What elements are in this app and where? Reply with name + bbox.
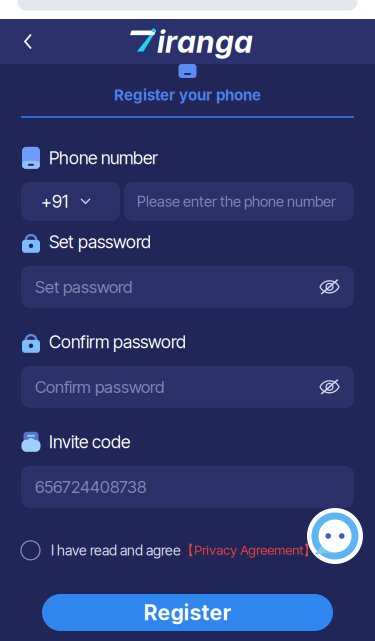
staticText: iranga [157,23,253,60]
button[interactable]: +91 [21,182,120,221]
staticText: Please enter the phone number [137,192,336,210]
staticText: Confirm password [49,331,186,352]
staticText: Register [143,600,231,625]
button[interactable]: Customer service [306,507,364,565]
staticText: 656724408738 [35,477,146,497]
staticText: Invite code [49,431,130,452]
button[interactable]: 【Privacy Agreement】 [181,542,316,559]
button[interactable]: Confirm password [21,366,354,408]
button[interactable]: Back [8,19,48,64]
staticText: Confirm password [35,377,164,397]
staticText: I have read and agree [51,542,181,559]
staticText: Set password [35,277,132,297]
staticText: Set password [49,231,151,252]
button[interactable]: Please enter the phone number [124,182,354,221]
staticText: Register your phone [114,86,261,104]
staticText: 【Privacy Agreement】 [181,542,316,559]
button[interactable]: 656724408738 [21,466,354,508]
staticText: +91 [41,191,68,212]
button[interactable]: Register [42,594,333,631]
button[interactable]: Set password [21,266,354,308]
button[interactable]: Agree to privacy agreement [21,536,51,565]
staticText: Phone number [49,147,158,168]
